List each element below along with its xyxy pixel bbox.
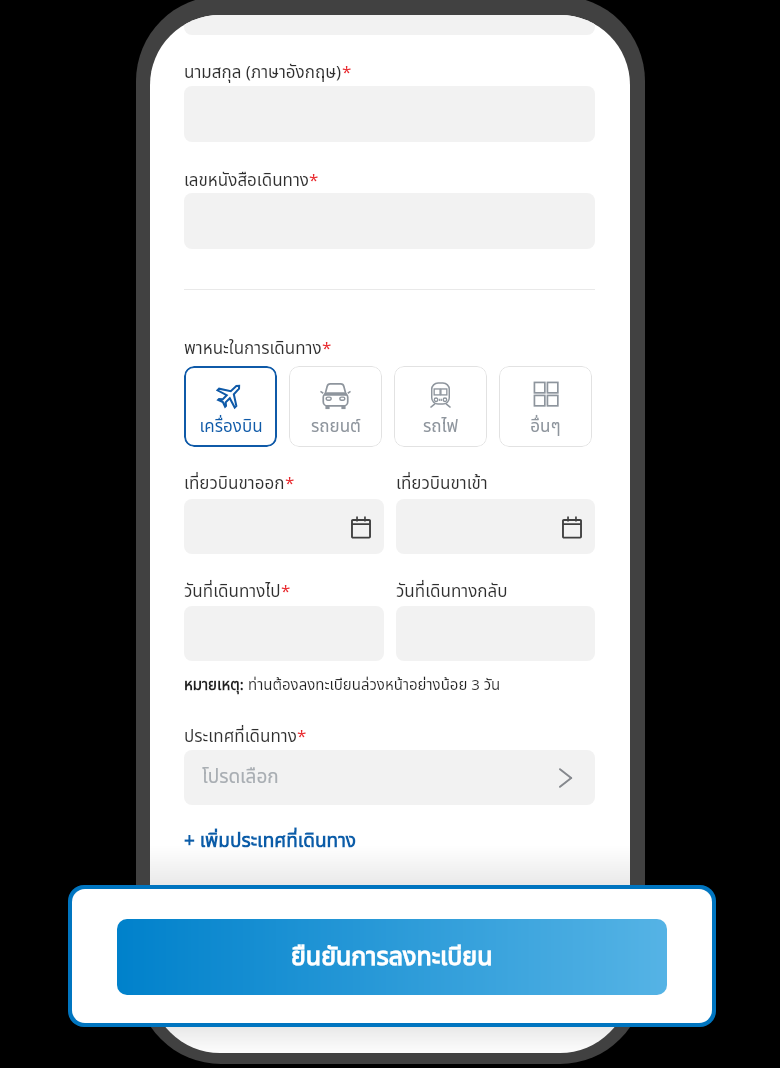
button[interactable]: + เพิ่มประเทศที่เดินทาง <box>184 827 357 856</box>
button[interactable]: ยืนยันการลงทะเบียน <box>117 919 667 995</box>
button[interactable]: Pick date <box>184 499 384 554</box>
staticText: รถไฟ <box>423 414 458 440</box>
staticText: รถยนต์ <box>311 414 361 440</box>
staticText: นามสกุล (ภาษาอังกฤษ) <box>184 60 342 86</box>
staticText: เที่ยวบินขาเข้า <box>396 471 488 497</box>
staticText: ยืนยันการลงทะเบียน <box>291 938 493 976</box>
staticText: พาหนะในการเดินทาง <box>184 336 322 362</box>
button[interactable]: อื่นๆ <box>499 366 592 447</box>
staticText: หมายเหตุ: <box>184 674 248 697</box>
button[interactable]: รถไฟ <box>394 366 487 447</box>
staticText: โปรดเลือก <box>202 763 279 792</box>
staticText: วันที่เดินทางไป <box>184 579 281 605</box>
staticText: ประเทศที่เดินทาง <box>184 724 297 750</box>
staticText: เลขหนังสือเดินทาง <box>184 168 309 194</box>
staticText: * <box>309 168 319 194</box>
staticText: เที่ยวบินขาออก <box>184 471 285 497</box>
staticText: เครื่องบิน <box>199 414 263 440</box>
button[interactable]: โปรดเลือก <box>184 750 595 805</box>
staticText: * <box>322 336 332 362</box>
staticText: อื่นๆ <box>530 414 561 440</box>
staticText: วันที่เดินทางกลับ <box>396 579 508 605</box>
button[interactable]: Pick date <box>396 499 595 554</box>
button[interactable]: รถยนต์ <box>289 366 382 447</box>
button[interactable]: เครื่องบิน <box>184 366 277 447</box>
staticText: * <box>285 471 295 497</box>
staticText: * <box>342 60 352 86</box>
staticText: * <box>297 724 307 750</box>
staticText: + เพิ่มประเทศที่เดินทาง <box>184 827 357 856</box>
staticText: ท่านต้องลงทะเบียนล่วงหน้าอย่างน้อย 3 วัน <box>248 674 501 697</box>
staticText: * <box>281 579 291 605</box>
